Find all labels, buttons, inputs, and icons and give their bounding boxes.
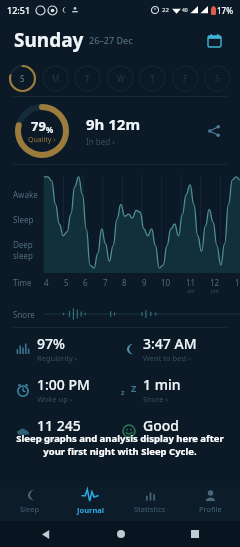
staticText: pm bbox=[211, 288, 219, 295]
button[interactable]: Journal bbox=[60, 481, 120, 521]
staticText: Good bbox=[143, 416, 179, 435]
staticText: 17% bbox=[217, 5, 233, 16]
staticText: sleep bbox=[13, 250, 33, 261]
button[interactable]: Sleep bbox=[0, 481, 60, 521]
staticText: Wake up mood bbox=[143, 435, 197, 445]
staticText: W bbox=[117, 73, 125, 84]
staticText: 26–27 Dec bbox=[89, 34, 133, 46]
staticText: Deep bbox=[13, 239, 33, 250]
button[interactable]: F bbox=[171, 64, 200, 93]
staticText: 97% bbox=[37, 334, 65, 353]
staticText: Statistics bbox=[134, 504, 166, 514]
button[interactable]: S bbox=[8, 64, 37, 93]
staticText: Steps bbox=[37, 435, 57, 445]
button[interactable]: Good bbox=[120, 416, 226, 445]
staticText: Sleep bbox=[20, 504, 40, 514]
staticText: T bbox=[150, 73, 155, 84]
staticText: 22 bbox=[162, 6, 169, 14]
staticText: 9 bbox=[142, 277, 147, 288]
button[interactable]: T bbox=[73, 64, 102, 93]
button[interactable]: Share bbox=[202, 119, 226, 143]
button[interactable]: 9h 12m bbox=[86, 114, 141, 147]
staticText: am bbox=[187, 288, 195, 295]
staticText: Z bbox=[131, 382, 137, 394]
button[interactable]: T bbox=[138, 64, 167, 93]
staticText: 8 bbox=[122, 277, 127, 288]
staticText: Sleep bbox=[13, 214, 34, 225]
staticText: 11 245 bbox=[37, 416, 81, 435]
staticText: 11 bbox=[186, 277, 196, 288]
button[interactable]: Statistics bbox=[120, 481, 180, 521]
staticText: In bed › bbox=[86, 136, 115, 147]
staticText: T bbox=[85, 73, 90, 84]
staticText: Time bbox=[13, 277, 32, 288]
staticText: 1:00 PM bbox=[37, 375, 90, 394]
button[interactable]: z bbox=[120, 375, 226, 404]
staticText: 12:51 bbox=[7, 4, 31, 16]
staticText: Sleep graphs and analysis display here a… bbox=[10, 432, 230, 458]
staticText: Quality › bbox=[28, 135, 56, 145]
staticText: M bbox=[52, 73, 60, 84]
staticText: 1 min bbox=[143, 375, 181, 394]
staticText: Went to bed › bbox=[143, 353, 191, 363]
staticText: 7 bbox=[103, 277, 108, 288]
staticText: S bbox=[215, 73, 220, 84]
button[interactable]: 11 245 bbox=[14, 416, 120, 445]
staticText: F bbox=[183, 73, 188, 84]
staticText: 6 bbox=[83, 277, 88, 288]
button[interactable]: 1:00 PM bbox=[14, 375, 120, 404]
staticText: 3:47 AM bbox=[143, 334, 197, 353]
button[interactable]: M bbox=[41, 64, 70, 93]
staticText: 5 bbox=[64, 277, 69, 288]
staticText: Regularity › bbox=[37, 353, 78, 363]
button[interactable]: 97% bbox=[14, 334, 120, 363]
staticText: Awake bbox=[13, 189, 38, 200]
staticText: Profile bbox=[199, 504, 222, 514]
staticText: Snore bbox=[13, 309, 35, 320]
staticText: 79 bbox=[31, 117, 46, 135]
staticText: Snore › bbox=[143, 394, 168, 404]
button[interactable]: 79 bbox=[14, 103, 70, 159]
staticText: 40 bbox=[182, 7, 188, 14]
button[interactable]: Profile bbox=[180, 481, 240, 521]
staticText: 1 bbox=[235, 277, 240, 288]
staticText: z bbox=[121, 388, 125, 398]
staticText: S bbox=[20, 73, 25, 84]
button[interactable]: 3:47 AM bbox=[120, 334, 226, 363]
staticText: % bbox=[46, 124, 54, 135]
staticText: 4 bbox=[44, 277, 49, 288]
button[interactable]: Snore bbox=[0, 301, 240, 327]
staticText: Woke up › bbox=[37, 394, 73, 404]
button[interactable]: Calendar bbox=[202, 28, 226, 52]
button[interactable]: S bbox=[203, 64, 232, 93]
button[interactable]: W bbox=[106, 64, 135, 93]
staticText: Journal bbox=[77, 505, 104, 515]
staticText: 10 bbox=[161, 277, 171, 288]
staticText: Sunday bbox=[14, 27, 84, 53]
staticText: 12 bbox=[210, 277, 220, 288]
staticText: 9h 12m bbox=[86, 114, 141, 134]
